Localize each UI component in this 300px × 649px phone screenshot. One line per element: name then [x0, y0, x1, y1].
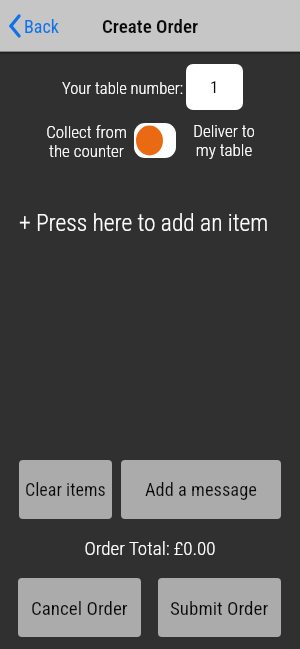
button[interactable]: 1	[186, 64, 243, 110]
staticText: Cancel Order	[31, 597, 128, 619]
staticText: Collect from the counter	[26, 122, 147, 161]
button[interactable]: + Press here to add an item	[0, 209, 300, 237]
button[interactable]: Add a message	[121, 460, 281, 519]
staticText: Create Order	[102, 15, 199, 37]
staticText: Add a message	[145, 479, 257, 501]
button[interactable]: Back	[6, 9, 62, 43]
staticText: Submit Order	[170, 597, 269, 619]
staticText: 1	[210, 77, 219, 97]
button[interactable]: Collect or deliver toggle	[134, 123, 176, 158]
staticText: Deliver to my table	[164, 121, 284, 160]
staticText: Your table number:	[62, 79, 184, 98]
button[interactable]: Clear items	[19, 460, 112, 519]
staticText: Clear items	[25, 479, 106, 500]
staticText: Order Total: £0.00	[0, 537, 300, 559]
staticText: Back	[24, 16, 59, 37]
button[interactable]: Cancel Order	[18, 578, 141, 637]
button[interactable]: Submit Order	[158, 578, 281, 637]
